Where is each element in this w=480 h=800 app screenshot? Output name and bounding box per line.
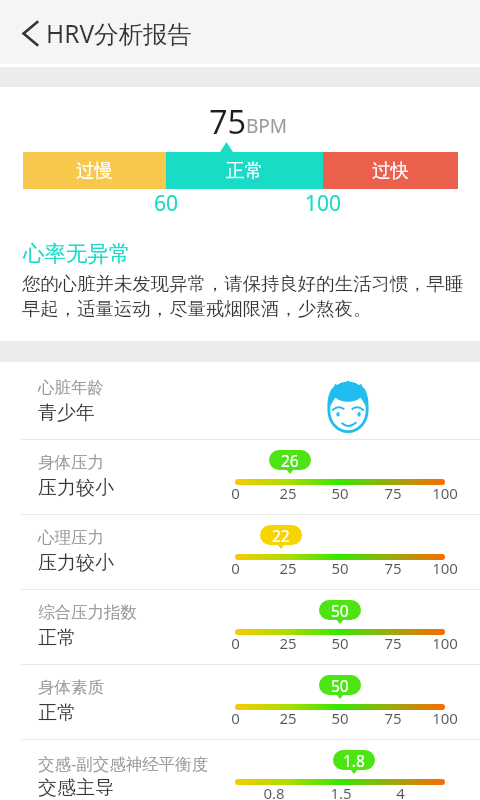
button[interactable]: 交感-副交感神经平衡度 (0, 739, 480, 800)
button[interactable]: 综合压力指数 (0, 589, 480, 664)
staticText: 22 (272, 525, 290, 545)
staticText: 青少年 (38, 401, 95, 425)
staticText: 身体素质 (38, 677, 104, 698)
staticText: 身体压力 (38, 452, 104, 473)
staticText: 75 (384, 483, 402, 503)
staticText: 75 (384, 708, 402, 728)
staticText: 75 (209, 99, 247, 143)
staticText: HRV分析报告 (46, 17, 193, 50)
staticText: 100 (432, 483, 458, 503)
staticText: 50 (331, 558, 349, 578)
staticText: 50 (331, 675, 349, 695)
staticText: 100 (305, 189, 342, 218)
staticText: 0 (231, 483, 240, 503)
staticText: 1.5 (330, 783, 352, 800)
staticText: 综合压力指数 (38, 602, 137, 623)
staticText: 心理压力 (38, 527, 104, 548)
staticText: 0 (231, 633, 240, 653)
staticText: 过快 (372, 159, 409, 182)
staticText: 0.8 (263, 783, 285, 800)
staticText: 心率无异常 (23, 240, 131, 267)
staticText: 交感-副交感神经平衡度 (38, 752, 209, 775)
staticText: 25 (279, 483, 297, 503)
staticText: 0 (231, 558, 240, 578)
staticText: 压力较小 (38, 551, 114, 575)
staticText: 50 (331, 600, 349, 620)
staticText: 压力较小 (38, 476, 114, 500)
staticText: 心脏年龄 (38, 377, 104, 398)
staticText: 您的心脏并未发现异常，请保持良好的生活习惯，早睡早起，适量运动，尽量戒烟限酒，少… (22, 272, 468, 321)
button[interactable]: 心理压力 (0, 514, 480, 589)
button[interactable]: 身体素质 (0, 664, 480, 739)
staticText: 100 (432, 558, 458, 578)
staticText: 75 (384, 633, 402, 653)
staticText: 正常 (38, 626, 76, 650)
staticText: 25 (279, 633, 297, 653)
staticText: 50 (331, 483, 349, 503)
button[interactable]: 过慢 (23, 152, 166, 189)
staticText: 50 (331, 633, 349, 653)
staticText: 50 (331, 708, 349, 728)
button[interactable]: Back (0, 0, 46, 64)
staticText: 100 (432, 633, 458, 653)
staticText: BPM (246, 113, 288, 139)
staticText: 交感主导 (38, 776, 114, 800)
staticText: 4 (396, 783, 405, 800)
staticText: 0 (231, 708, 240, 728)
staticText: 正常 (38, 701, 76, 725)
button[interactable]: 正常 (166, 152, 323, 189)
staticText: 过慢 (76, 159, 113, 182)
staticText: 100 (432, 708, 458, 728)
button[interactable]: 心脏年龄 (0, 362, 480, 439)
staticText: 25 (279, 558, 297, 578)
button[interactable]: 身体压力 (0, 439, 480, 514)
staticText: 正常 (226, 159, 263, 182)
button[interactable]: 过快 (323, 152, 458, 189)
staticText: 60 (154, 189, 179, 218)
staticText: 26 (281, 450, 299, 470)
staticText: 75 (384, 558, 402, 578)
staticText: 25 (279, 708, 297, 728)
staticText: 1.8 (343, 750, 365, 770)
